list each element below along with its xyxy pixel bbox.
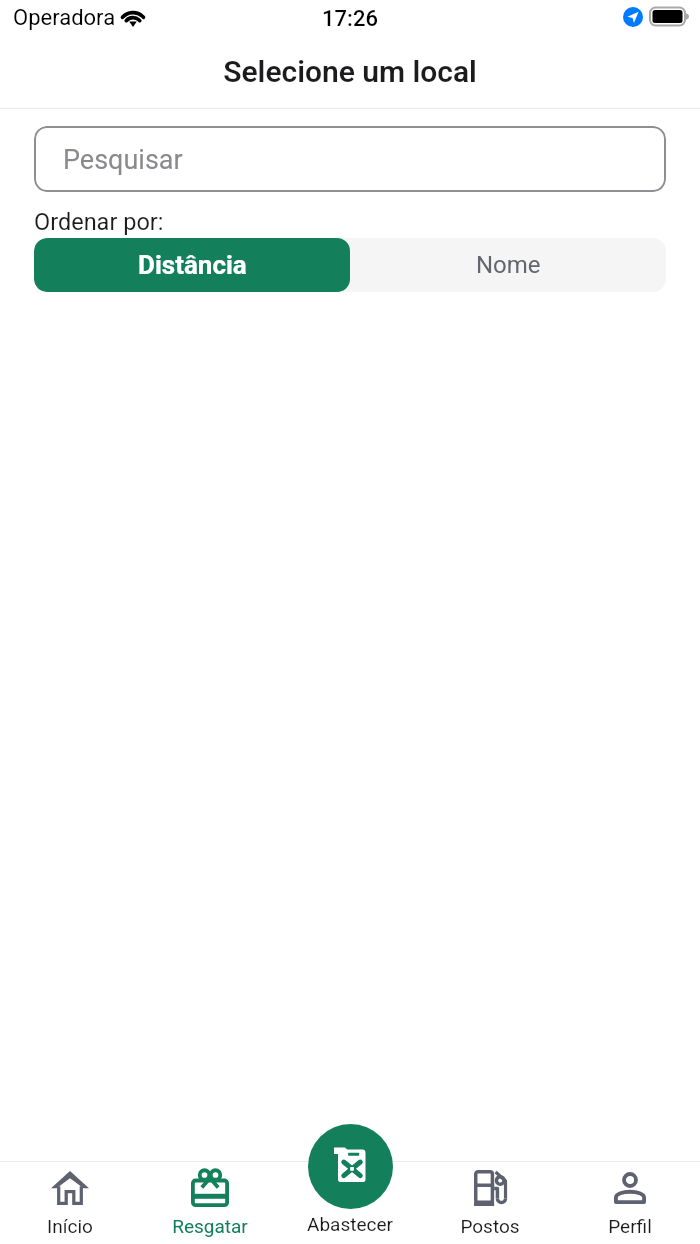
button[interactable]: Resgatar	[140, 1162, 280, 1244]
staticText: Abastecer	[0, 1213, 700, 1235]
staticText: Operadora	[13, 5, 116, 31]
staticText: Início	[47, 1215, 93, 1237]
staticText: Ordenar por:	[34, 208, 164, 236]
button[interactable]: Abastecer	[308, 1124, 393, 1209]
staticText: Pesquisar	[63, 144, 183, 176]
staticText: Selecione um local	[0, 54, 700, 89]
button[interactable]: Distância	[34, 238, 350, 292]
staticText: Postos	[460, 1215, 520, 1237]
button[interactable]: Nome	[350, 238, 666, 292]
other: Location services	[623, 7, 643, 27]
button[interactable]: Postos	[420, 1162, 560, 1244]
button[interactable]: Início	[0, 1162, 140, 1244]
staticText: Perfil	[608, 1215, 652, 1237]
staticText: 17:26	[0, 6, 700, 32]
button[interactable]: Pesquisar	[34, 126, 666, 192]
staticText: Distância	[138, 250, 247, 280]
button[interactable]: Perfil	[560, 1162, 700, 1244]
staticText: Resgatar	[172, 1215, 248, 1237]
staticText: Nome	[476, 251, 541, 279]
